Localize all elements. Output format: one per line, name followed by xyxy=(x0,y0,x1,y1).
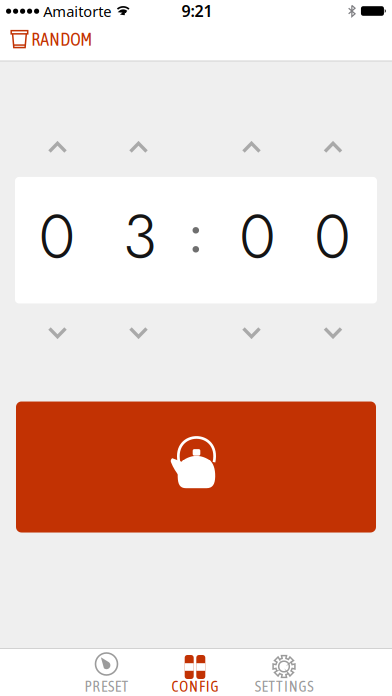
button[interactable]: Decrease digit 2 xyxy=(129,326,148,338)
staticText: S xyxy=(108,678,114,695)
button[interactable]: Increase digit 4 xyxy=(323,141,342,153)
staticText: G xyxy=(210,678,218,695)
staticText: 0 xyxy=(39,192,75,281)
button[interactable]: Start timer xyxy=(16,401,376,532)
staticText: G xyxy=(298,678,306,695)
staticText: N xyxy=(189,678,198,695)
staticText: C xyxy=(171,678,178,695)
staticText: O xyxy=(179,678,188,695)
staticText: 0 xyxy=(314,192,350,281)
staticText: P xyxy=(84,678,91,695)
staticText: R xyxy=(92,678,100,695)
button[interactable]: Decrease digit 3 xyxy=(242,326,261,338)
button[interactable]: P xyxy=(64,649,148,696)
button[interactable]: Increase digit 3 xyxy=(242,141,261,153)
staticText: 9:21 xyxy=(181,0,212,21)
staticText: I xyxy=(284,678,288,695)
staticText: S xyxy=(307,678,313,695)
staticText: N xyxy=(289,678,298,695)
staticText: T xyxy=(268,678,275,695)
button[interactable]: Decrease digit 1 xyxy=(48,326,67,338)
staticText: 0 xyxy=(239,192,275,281)
button[interactable]: Random preset xyxy=(11,24,141,54)
button[interactable]: Decrease digit 4 xyxy=(323,326,342,338)
button[interactable]: C xyxy=(153,649,237,696)
staticText: Amaitorte xyxy=(43,1,111,21)
staticText: E xyxy=(115,678,121,695)
staticText: S xyxy=(255,678,261,695)
staticText: E xyxy=(261,678,267,695)
staticText: I xyxy=(206,678,210,695)
button[interactable]: S xyxy=(242,649,326,696)
button[interactable]: Increase digit 1 xyxy=(48,141,67,153)
staticText: F xyxy=(199,678,205,695)
staticText: E xyxy=(101,678,107,695)
button[interactable]: Increase digit 2 xyxy=(129,141,148,153)
staticText: RANDOM xyxy=(31,29,92,49)
staticText: T xyxy=(276,678,283,695)
staticText: 3 xyxy=(123,192,157,281)
staticText: T xyxy=(121,678,128,695)
